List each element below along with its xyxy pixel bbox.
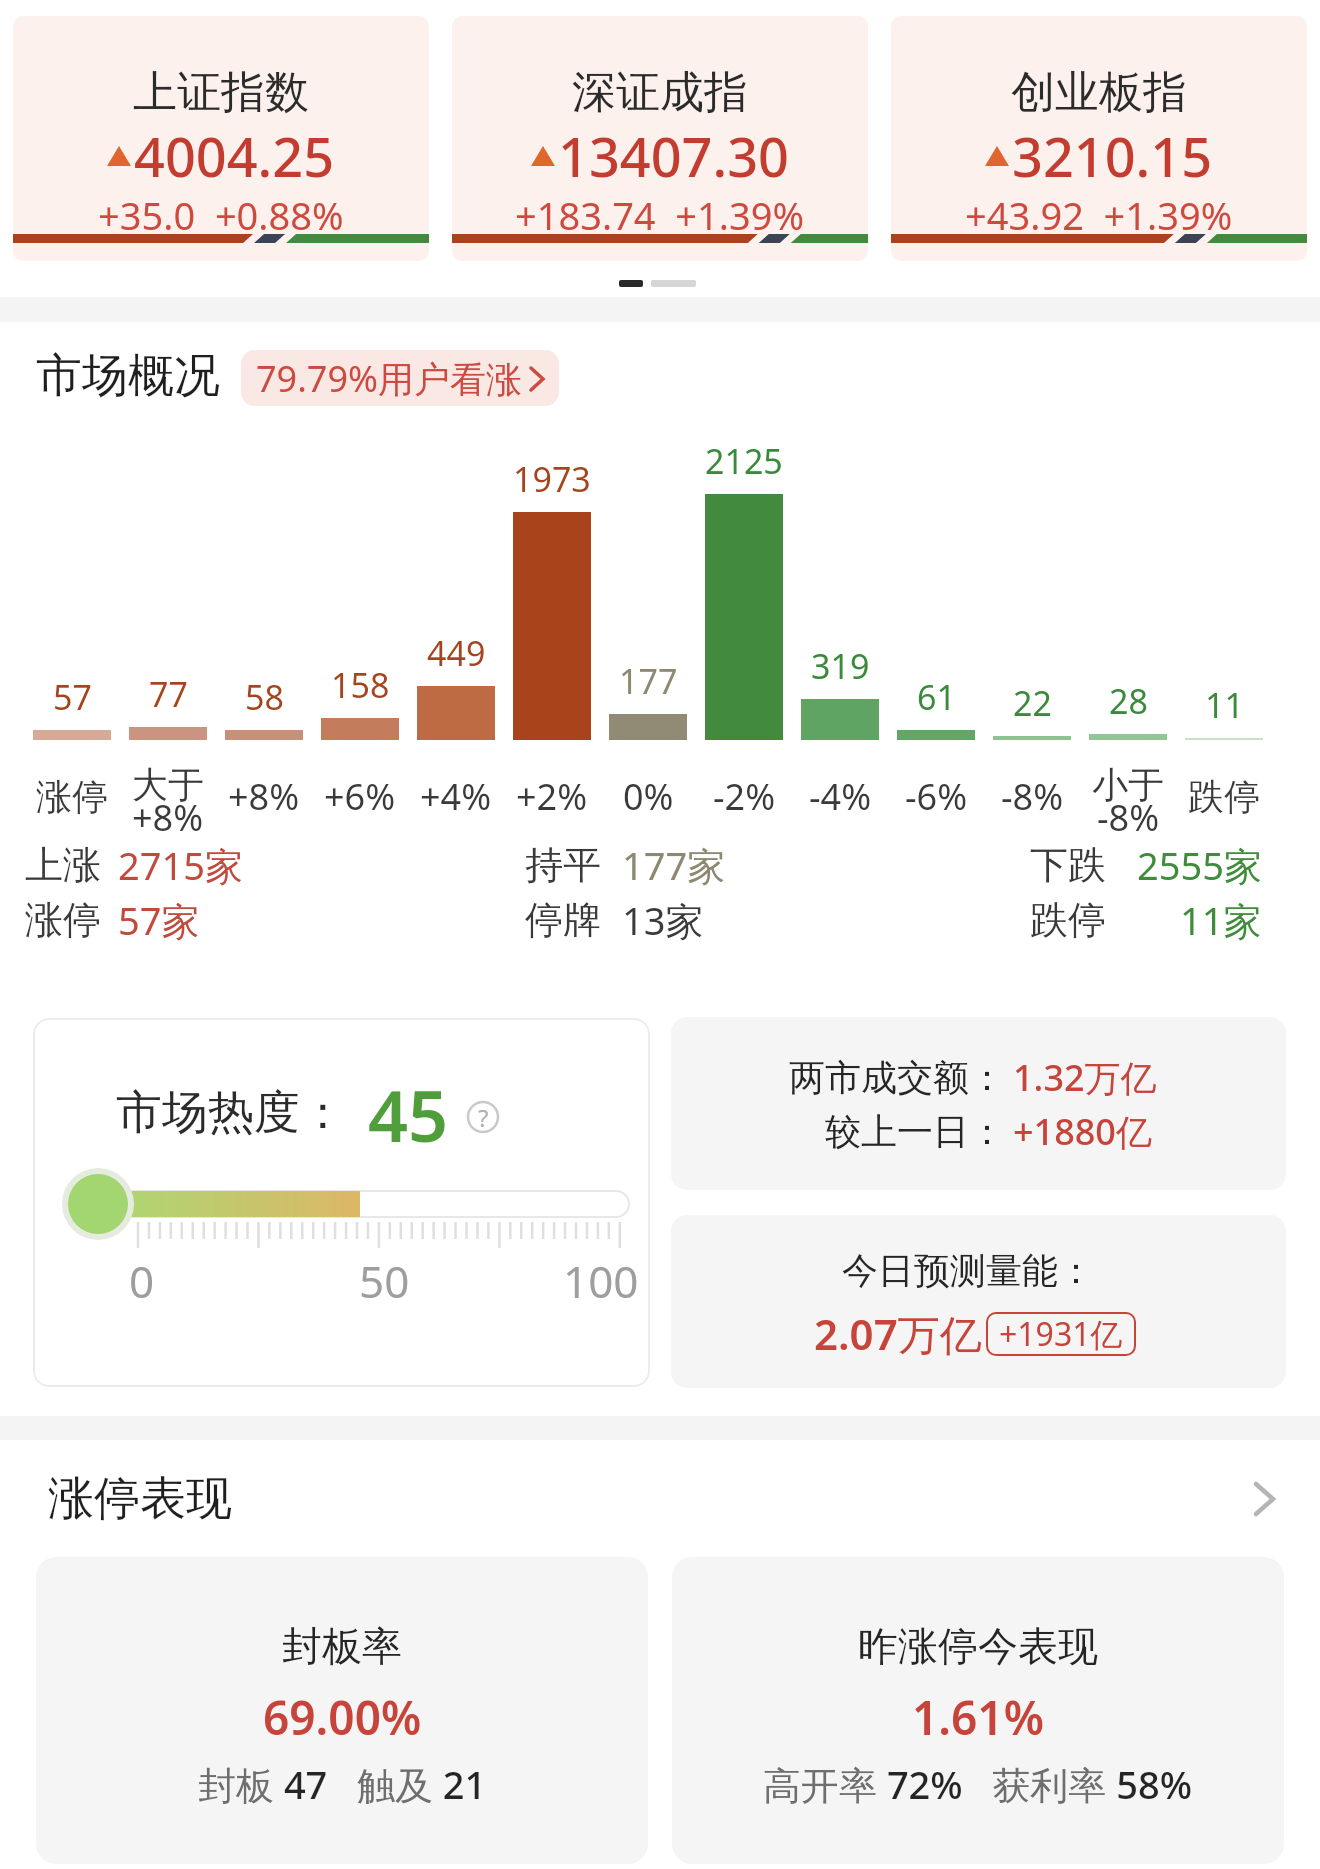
button[interactable] — [36, 1557, 648, 1864]
staticText: 跌停 — [1030, 896, 1106, 944]
staticText: 4004.25 — [134, 119, 335, 193]
staticText: 2715家 — [118, 839, 243, 891]
staticText: 市场概况 — [36, 347, 220, 405]
staticText: 79.79%用户看涨 — [256, 354, 522, 403]
staticText: 57 — [53, 674, 92, 720]
staticText: 下跌 — [1030, 841, 1106, 889]
staticText: -8% — [1001, 772, 1064, 821]
staticText: 停牌 — [525, 896, 601, 944]
staticText: +8% — [228, 772, 300, 821]
staticText: 高开率 72% 获利率 58% — [763, 1758, 1193, 1810]
staticText: 0 — [129, 1251, 155, 1311]
staticText: 封板率 — [282, 1621, 402, 1671]
staticText: 28 — [1109, 678, 1148, 724]
staticText: +35.0 +0.88% — [98, 189, 344, 241]
staticText: 77 — [149, 671, 188, 717]
staticText: +6% — [324, 772, 396, 821]
staticText: 158 — [331, 662, 390, 708]
staticText: 创业板指 — [1011, 65, 1187, 120]
staticText: 大于 — [132, 762, 204, 807]
staticText: 11 — [1205, 682, 1244, 728]
staticText: +1931亿 — [999, 1312, 1123, 1356]
button[interactable]: 79.79%用户看涨 — [241, 350, 559, 406]
staticText: -4% — [809, 772, 872, 821]
staticText: 2.07万亿 — [814, 1305, 982, 1362]
staticText: 上涨 — [25, 841, 101, 889]
staticText: 449 — [427, 630, 486, 676]
staticText: 2555家 — [1137, 839, 1262, 891]
staticText: 3210.15 — [1012, 119, 1213, 193]
staticText: 市场热度： — [116, 1084, 346, 1142]
staticText: 涨停 — [36, 774, 108, 819]
staticText: 较上一日： — [825, 1109, 1005, 1154]
staticText: 今日预测量能： — [842, 1248, 1094, 1293]
staticText: +183.74 +1.39% — [515, 189, 805, 241]
button[interactable] — [671, 1215, 1286, 1388]
staticText: 跌停 — [1188, 774, 1260, 819]
staticText: 13家 — [622, 894, 704, 946]
staticText: +4% — [420, 772, 492, 821]
staticText: 小于 — [1092, 762, 1164, 807]
staticText: 50 — [359, 1251, 410, 1311]
staticText: 0% — [623, 772, 674, 821]
button[interactable] — [672, 1557, 1284, 1864]
staticText: +2% — [516, 772, 588, 821]
staticText: 1.61% — [912, 1686, 1044, 1749]
staticText: 深证成指 — [572, 65, 748, 120]
staticText: 100 — [563, 1251, 639, 1311]
staticText: -8% — [1097, 793, 1160, 842]
staticText: 57家 — [118, 894, 200, 946]
staticText: 177家 — [622, 839, 726, 891]
staticText: ? — [478, 1101, 489, 1134]
staticText: -2% — [713, 772, 776, 821]
staticText: 上证指数 — [133, 65, 309, 120]
staticText: 昨涨停今表现 — [858, 1621, 1098, 1671]
staticText: 涨停表现 — [48, 1470, 232, 1528]
staticText: 持平 — [525, 841, 601, 889]
staticText: 177 — [619, 658, 678, 704]
staticText: 58 — [245, 674, 284, 720]
staticText: 1973 — [513, 456, 591, 502]
staticText: 61 — [917, 674, 956, 720]
staticText: +43.92 +1.39% — [965, 189, 1233, 241]
staticText: -6% — [905, 772, 968, 821]
button[interactable]: 创业板指 — [891, 16, 1307, 261]
staticText: 69.00% — [263, 1686, 422, 1749]
staticText: +1880亿 — [1013, 1107, 1152, 1156]
staticText: 22 — [1013, 680, 1052, 726]
staticText: 13407.30 — [558, 119, 789, 193]
button[interactable]: 上证指数 — [13, 16, 429, 261]
staticText: 319 — [811, 643, 870, 689]
staticText: 涨停 — [25, 896, 101, 944]
button[interactable]: 深证成指 — [452, 16, 868, 261]
staticText: 1.32万亿 — [1013, 1053, 1157, 1102]
button[interactable] — [33, 1018, 650, 1387]
staticText: +8% — [132, 793, 204, 842]
staticText: 封板 47 触及 21 — [198, 1758, 487, 1810]
button[interactable] — [671, 1017, 1286, 1190]
staticText: 2125 — [705, 438, 783, 484]
button[interactable] — [0, 1454, 1320, 1544]
staticText: 11家 — [1180, 894, 1262, 946]
staticText: 两市成交额： — [789, 1055, 1005, 1100]
staticText: 45 — [368, 1067, 449, 1157]
